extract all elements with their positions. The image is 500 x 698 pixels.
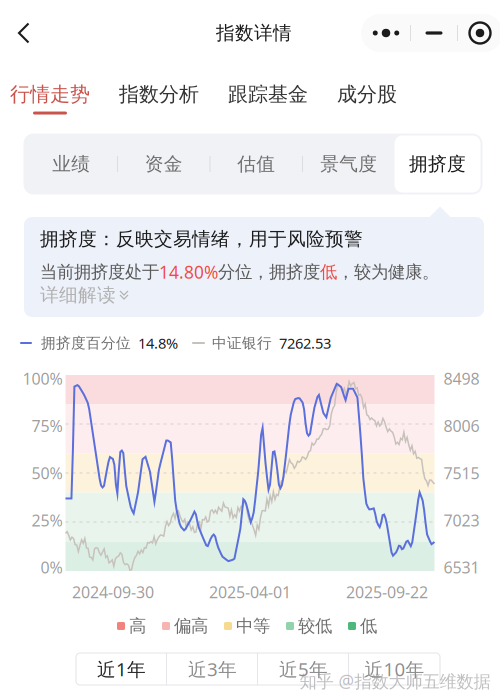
staticText: 偏高 [174, 615, 208, 637]
button[interactable]: 指数分析 [119, 82, 199, 115]
staticText: 0% [40, 557, 62, 578]
staticText: 14.80% [159, 260, 218, 283]
staticText: 14.8% [138, 333, 178, 353]
staticText: 7023 [443, 510, 479, 531]
staticText: 中等 [236, 615, 270, 637]
staticText: 100% [22, 368, 62, 389]
staticText: 2025-04-01 [209, 581, 291, 603]
button[interactable]: 行情走势 [10, 82, 90, 115]
staticText: 指数详情 [216, 21, 292, 44]
button[interactable]: Back [3, 11, 45, 55]
staticText: 低 [320, 261, 337, 283]
staticText: 高 [129, 615, 146, 637]
staticText: ，较为健康。 [337, 261, 439, 283]
button[interactable]: Close [458, 14, 500, 52]
staticText: 跟踪基金 [228, 82, 308, 107]
staticText: 详细解读 [40, 283, 116, 306]
staticText: 2024-09-30 [72, 581, 154, 603]
button[interactable]: More [362, 14, 410, 52]
staticText: 25% [31, 510, 62, 531]
staticText: 拥挤度：反映交易情绪，用于风险预警 [40, 227, 363, 250]
staticText: 6531 [443, 557, 479, 578]
button[interactable]: 近5年 [258, 653, 349, 685]
staticText: 8498 [443, 368, 479, 389]
button[interactable]: Minimize [411, 14, 457, 52]
staticText: 拥挤度 [409, 152, 466, 175]
staticText: 成分股 [337, 82, 397, 107]
staticText: 资金 [145, 152, 183, 175]
staticText: 2025-09-22 [346, 581, 428, 603]
staticText: 7515 [443, 462, 479, 484]
staticText: 8006 [443, 415, 479, 436]
staticText: 7262.53 [279, 333, 331, 353]
staticText: 低 [360, 615, 377, 637]
staticText: 景气度 [320, 152, 377, 175]
button[interactable]: 近10年 [349, 653, 440, 685]
staticText: 分位，拥挤度 [218, 261, 320, 283]
button[interactable]: 近3年 [167, 653, 258, 685]
staticText: 业绩 [52, 152, 90, 175]
staticText: 50% [31, 462, 62, 484]
staticText: 近10年 [364, 657, 424, 681]
staticText: 行情走势 [10, 82, 90, 107]
staticText: 近5年 [279, 657, 328, 681]
button[interactable]: 详细解读 [40, 285, 129, 305]
staticText: 近3年 [188, 657, 237, 681]
button[interactable]: 近1年 [76, 653, 167, 685]
staticText: 当前拥挤度处于 [40, 261, 159, 283]
staticText: 知乎 @指数大师五维数据 [299, 669, 490, 692]
staticText: 75% [31, 415, 62, 436]
staticText: 较低 [298, 615, 332, 637]
staticText: 指数分析 [119, 82, 199, 107]
staticText: 拥挤度百分位 [41, 334, 131, 352]
button[interactable]: 成分股 [337, 82, 397, 115]
staticText: 中证银行 [212, 334, 272, 352]
button[interactable]: 跟踪基金 [228, 82, 308, 115]
staticText: 估值 [237, 152, 275, 175]
staticText: 近1年 [97, 657, 146, 681]
